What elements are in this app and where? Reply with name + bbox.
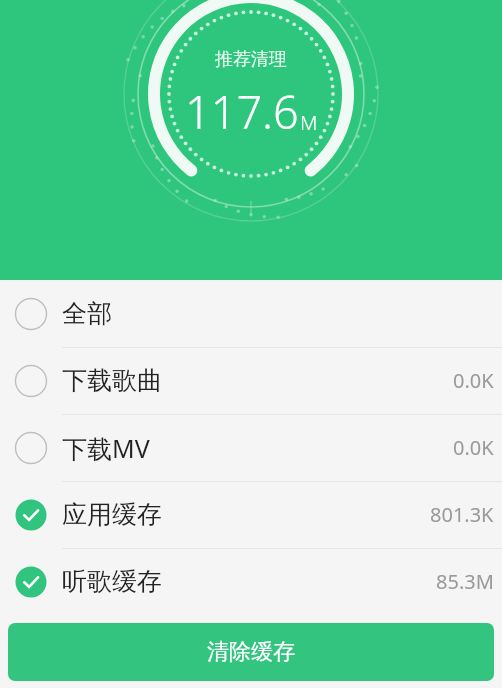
staticText: 应用缓存 (62, 499, 162, 530)
button[interactable]: 下载MV (0, 414, 502, 481)
button[interactable]: 清除缓存 (8, 623, 494, 681)
staticText: 85.3M (436, 568, 494, 595)
staticText: M (300, 109, 318, 136)
staticText: 清除缓存 (207, 638, 295, 666)
staticText: 801.3K (430, 501, 494, 528)
button[interactable]: 下载歌曲 (0, 347, 502, 414)
staticText: 推荐清理 (215, 48, 287, 71)
button[interactable]: 听歌缓存 (0, 548, 502, 615)
staticText: 全部 (62, 298, 112, 329)
staticText: 下载MV (62, 431, 150, 465)
button[interactable]: 应用缓存 (0, 481, 502, 548)
staticText: 0.0K (453, 367, 494, 394)
staticText: 117.6 (185, 81, 299, 142)
button[interactable]: 全部 (0, 280, 502, 347)
staticText: 听歌缓存 (62, 566, 162, 597)
staticText: 下载歌曲 (62, 365, 162, 396)
staticText: 0.0K (453, 434, 494, 461)
